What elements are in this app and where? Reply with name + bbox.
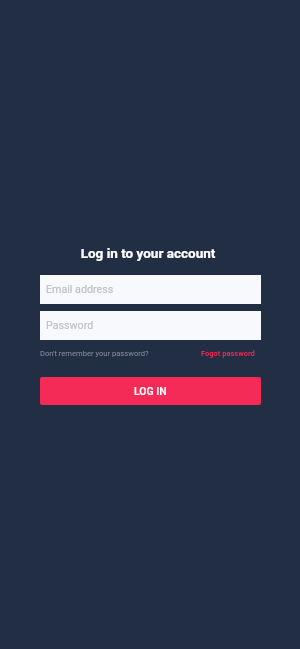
button[interactable]: Email address (40, 275, 261, 304)
staticText: Fogot password (201, 349, 255, 358)
staticText: Log in to your account (40, 245, 256, 261)
staticText: Email address (46, 283, 114, 296)
staticText: LOG IN (134, 385, 167, 397)
staticText: Don't remember your password? (40, 349, 149, 358)
button[interactable]: Password (40, 311, 261, 340)
staticText: Password (46, 319, 94, 332)
button[interactable]: LOG IN (40, 377, 261, 405)
button[interactable]: Fogot password (201, 349, 261, 358)
